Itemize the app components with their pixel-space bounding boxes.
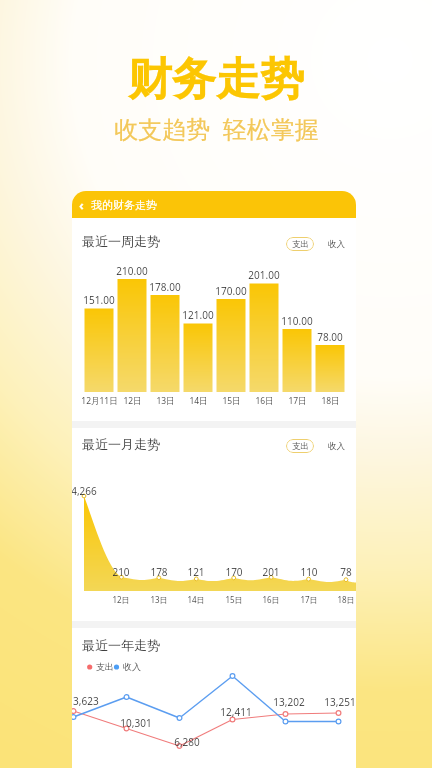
- staticText: 收入: [328, 441, 345, 452]
- staticText: 201: [262, 565, 280, 579]
- staticText: 13日: [150, 594, 168, 605]
- staticText: 110.00: [281, 314, 313, 328]
- staticText: 12月11日: [81, 395, 118, 407]
- staticText: 14日: [189, 395, 208, 407]
- staticText: 最近一月走势: [82, 436, 160, 452]
- staticText: 15日: [225, 594, 243, 605]
- staticText: 支出: [292, 239, 309, 250]
- staticText: 15日: [222, 395, 241, 407]
- staticText: 110: [300, 565, 318, 579]
- staticText: 13日: [156, 395, 175, 407]
- button[interactable]: ‹: [72, 191, 356, 218]
- staticText: 170.00: [215, 284, 247, 298]
- staticText: 收支趋势 轻松掌握: [114, 112, 319, 145]
- staticText: 13,251: [324, 695, 356, 709]
- staticText: 12日: [123, 395, 142, 407]
- staticText: 78: [340, 565, 352, 579]
- button[interactable]: 支出: [286, 439, 314, 453]
- staticText: 收入: [123, 661, 141, 672]
- staticText: 210: [112, 565, 130, 579]
- staticText: 16日: [255, 395, 274, 407]
- staticText: 13,623: [72, 694, 99, 708]
- staticText: 6,280: [174, 735, 200, 749]
- staticText: 14日: [187, 594, 205, 605]
- staticText: 151.00: [83, 293, 115, 307]
- staticText: 我的财务走势: [91, 198, 157, 212]
- staticText: 12日: [112, 594, 130, 605]
- staticText: 18日: [337, 594, 355, 605]
- button[interactable]: 收入: [322, 235, 350, 253]
- staticText: 178: [150, 565, 168, 579]
- staticText: 10,301: [120, 716, 152, 730]
- staticText: 121.00: [182, 308, 214, 322]
- staticText: 收入: [328, 239, 345, 250]
- staticText: 最近一年走势: [82, 637, 160, 653]
- button[interactable]: 收入: [322, 437, 350, 455]
- staticText: 13,202: [273, 695, 305, 709]
- staticText: 78.00: [317, 330, 343, 344]
- staticText: 支出: [292, 441, 309, 452]
- staticText: 17日: [300, 594, 318, 605]
- staticText: 16日: [262, 594, 280, 605]
- staticText: 12,411: [220, 705, 252, 719]
- staticText: 210.00: [116, 264, 148, 278]
- staticText: 4,266: [72, 484, 97, 498]
- staticText: 18日: [321, 395, 340, 407]
- staticText: 最近一周走势: [82, 233, 160, 249]
- staticText: 178.00: [149, 280, 181, 294]
- staticText: 财务走势: [128, 52, 304, 107]
- staticText: 支出: [96, 661, 114, 672]
- staticText: 170: [225, 565, 243, 579]
- staticText: 17日: [288, 395, 307, 407]
- staticText: 121: [187, 565, 205, 579]
- staticText: 201.00: [248, 268, 280, 282]
- staticText: ‹: [79, 196, 84, 214]
- button[interactable]: 支出: [286, 237, 314, 251]
